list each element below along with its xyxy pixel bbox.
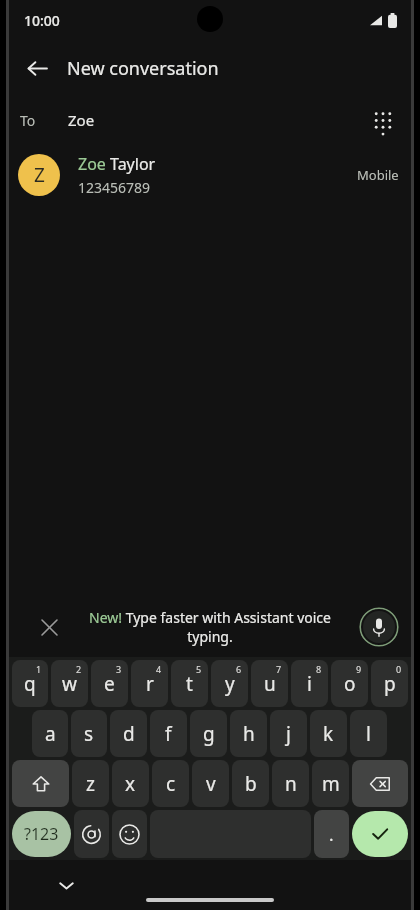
button[interactable]: n [272,760,309,807]
staticText: n [285,771,297,797]
button[interactable]: e [91,660,128,707]
button[interactable]: k [310,710,347,757]
button[interactable]: a [32,710,68,757]
button[interactable]: u [251,660,288,707]
button[interactable]: t [171,660,208,707]
button[interactable]: Hide keyboard [49,868,83,902]
staticText: q [24,671,36,697]
staticText: k [323,721,334,747]
staticText: 7 [276,663,282,675]
button[interactable]: r [131,660,168,707]
staticText: a [45,721,56,747]
staticText: e [104,671,115,697]
button[interactable]: q [12,660,48,707]
staticText: s [84,721,94,747]
button[interactable]: Shift [12,760,69,807]
staticText: w [62,671,77,697]
button[interactable]: Send [352,811,408,857]
button[interactable]: Emoji [112,810,147,858]
staticText: y [225,671,235,697]
button[interactable]: Voice typing [359,607,399,647]
button[interactable]: j [270,710,307,757]
staticText: 1 [36,663,42,675]
staticText: Zoe [68,110,95,130]
button[interactable]: s [71,710,107,757]
staticText: 9 [356,663,362,675]
button[interactable]: Back [15,46,59,90]
staticText: g [203,721,215,747]
button[interactable]: p [371,660,408,707]
button[interactable]: b [232,760,269,807]
staticText: o [344,671,356,697]
staticText: p [384,671,396,697]
button[interactable]: f [150,710,187,757]
staticText: 8 [316,663,322,675]
button[interactable]: x [112,760,149,807]
button[interactable]: Z [9,144,411,206]
button[interactable]: h [230,710,267,757]
staticText: 2 [76,663,82,675]
staticText: 10:00 [24,11,60,30]
button[interactable]: At sign [74,810,109,858]
staticText: d [123,721,135,747]
staticText: i [307,671,312,697]
button[interactable]: ?123 [12,811,71,857]
staticText: c [166,771,176,797]
button[interactable]: Backspace [352,760,408,807]
staticText: Z [34,162,45,188]
staticText: r [146,671,154,697]
staticText: 123456789 [78,178,151,197]
button[interactable]: i [291,660,328,707]
staticText: b [245,771,257,797]
staticText: h [243,721,255,747]
button[interactable]: z [72,760,109,807]
button[interactable]: o [331,660,368,707]
staticText: u [264,671,276,697]
button[interactable]: . [314,810,349,858]
staticText: j [286,721,291,747]
staticText: z [86,771,95,797]
staticText: ?123 [24,823,59,845]
staticText: 3 [116,663,122,675]
staticText: v [206,771,216,797]
button[interactable]: Dialpad [361,99,403,141]
button[interactable]: c [152,760,189,807]
staticText: Zoe Taylor [78,153,156,175]
staticText: t [186,671,193,697]
staticText: 0 [396,663,402,675]
button[interactable]: v [192,760,229,807]
button[interactable]: m [312,760,349,807]
staticText: New conversation [67,56,219,81]
staticText: New! Type faster with Assistant voice ty… [75,608,345,646]
staticText: . [329,823,334,846]
button[interactable]: Dismiss [31,609,67,645]
button[interactable]: d [110,710,147,757]
staticText: f [165,721,172,747]
button[interactable]: w [51,660,88,707]
staticText: 5 [196,663,202,675]
staticText: m [322,771,340,797]
staticText: l [366,721,371,747]
staticText: 4 [156,663,162,675]
staticText: To [20,111,36,130]
staticText: x [125,771,136,797]
button[interactable]: l [350,710,387,757]
button[interactable]: g [190,710,227,757]
staticText: 6 [236,663,242,675]
button[interactable]: y [211,660,248,707]
staticText: Mobile [357,166,399,184]
